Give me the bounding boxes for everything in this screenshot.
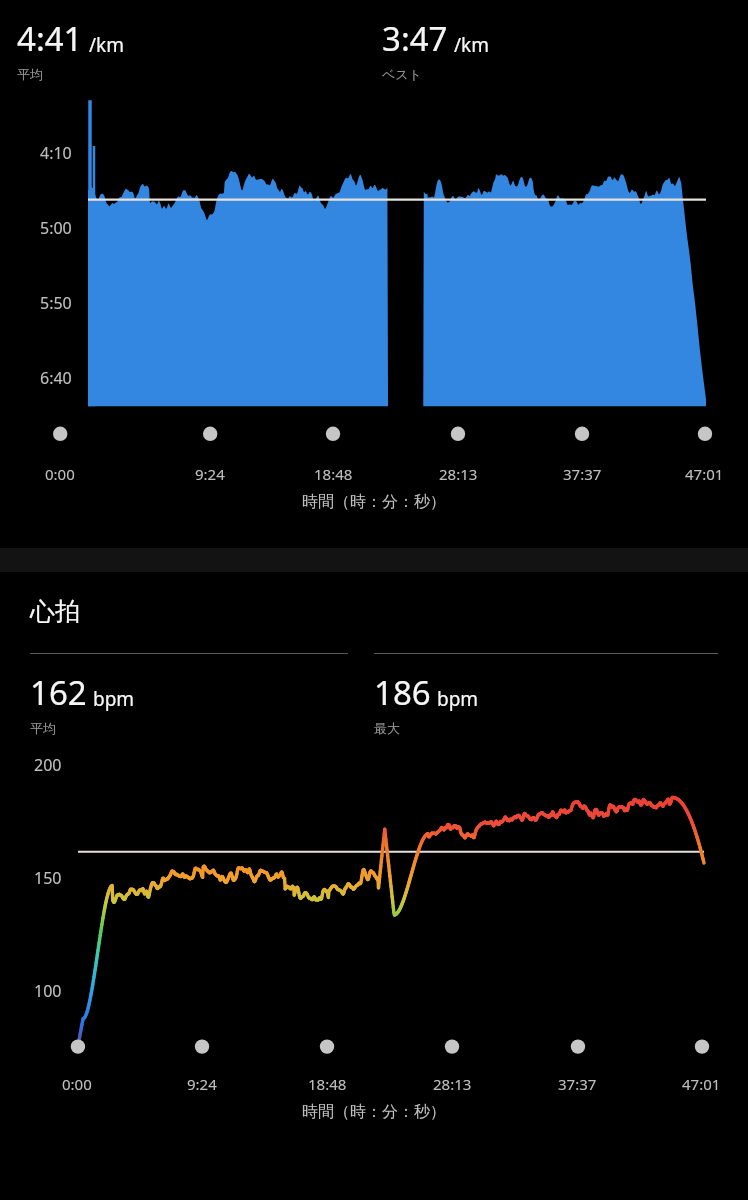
staticText: 4:10 bbox=[40, 142, 72, 164]
staticText: 6:40 bbox=[40, 367, 72, 389]
staticText: 時間（時：分：秒） bbox=[0, 492, 748, 512]
staticText: 162 bbox=[30, 670, 87, 715]
staticText: 最大 bbox=[374, 720, 400, 736]
staticText: 47:01 bbox=[682, 1074, 721, 1094]
staticText: 150 bbox=[34, 867, 62, 889]
button[interactable]: 4:41 bbox=[0, 0, 748, 548]
button[interactable]: 心拍 bbox=[0, 572, 748, 1200]
staticText: /km bbox=[89, 32, 124, 58]
staticText: 37:37 bbox=[563, 464, 602, 484]
staticText: 5:00 bbox=[40, 217, 72, 239]
staticText: 5:50 bbox=[40, 292, 72, 314]
staticText: 28:13 bbox=[439, 464, 478, 484]
staticText: 9:24 bbox=[195, 464, 225, 484]
staticText: 37:37 bbox=[558, 1074, 597, 1094]
staticText: 100 bbox=[34, 980, 62, 1002]
staticText: 0:00 bbox=[62, 1074, 92, 1094]
staticText: 28:13 bbox=[433, 1074, 472, 1094]
staticText: 18:48 bbox=[308, 1074, 347, 1094]
staticText: /km bbox=[454, 32, 489, 58]
staticText: 時間（時：分：秒） bbox=[0, 1102, 748, 1122]
staticText: 平均 bbox=[30, 720, 56, 736]
staticText: 18:48 bbox=[314, 464, 353, 484]
staticText: bpm bbox=[437, 686, 479, 712]
staticText: 200 bbox=[34, 754, 62, 776]
staticText: ベスト bbox=[382, 66, 422, 82]
staticText: 186 bbox=[374, 670, 431, 715]
staticText: 平均 bbox=[17, 66, 43, 82]
staticText: bpm bbox=[93, 686, 135, 712]
staticText: 0:00 bbox=[45, 464, 75, 484]
staticText: 3:47 bbox=[382, 16, 448, 61]
staticText: 4:41 bbox=[17, 16, 83, 61]
staticText: 心拍 bbox=[30, 596, 80, 627]
staticText: 47:01 bbox=[685, 464, 724, 484]
staticText: 9:24 bbox=[187, 1074, 217, 1094]
